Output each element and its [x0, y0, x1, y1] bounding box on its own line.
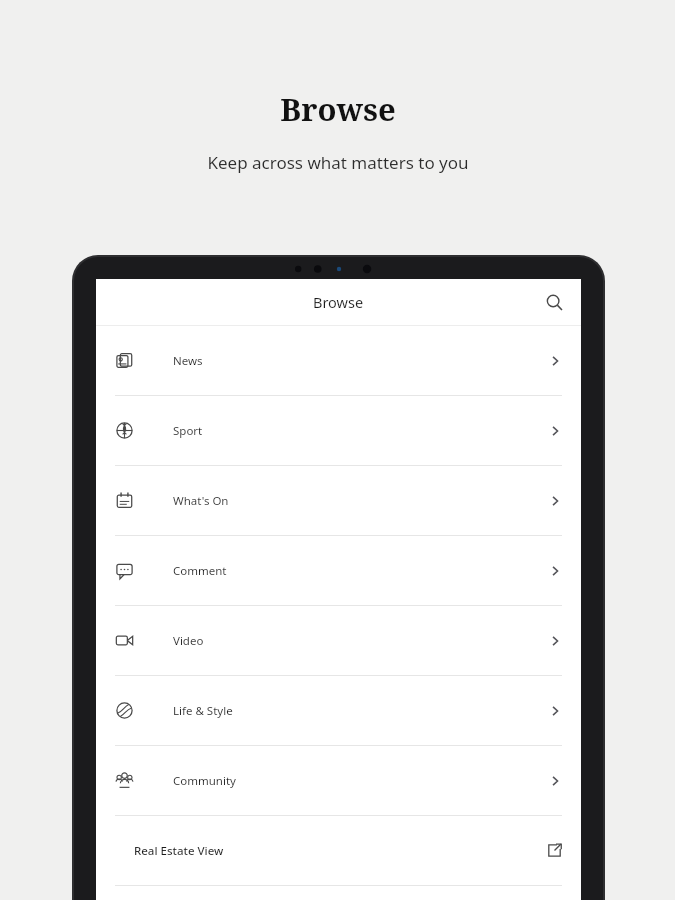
button[interactable]: Search — [537, 285, 571, 319]
button[interactable]: Video — [96, 606, 581, 675]
button[interactable]: Life & Style — [96, 676, 581, 745]
staticText: News — [173, 353, 548, 369]
staticText: Life & Style — [173, 703, 548, 719]
staticText: Sport — [173, 423, 548, 439]
button[interactable]: Real Estate View — [96, 816, 581, 885]
button[interactable]: Community — [96, 746, 581, 815]
staticText: Keep across what matters to you — [207, 151, 469, 174]
staticText: Browse — [280, 88, 396, 130]
button[interactable]: Comment — [96, 536, 581, 605]
staticText: Real Estate View — [134, 843, 547, 859]
button[interactable]: News — [96, 326, 581, 395]
button[interactable]: What's On — [96, 466, 581, 535]
staticText: What's On — [173, 493, 548, 509]
staticText: Video — [173, 633, 548, 649]
staticText: Community — [173, 773, 548, 789]
staticText: Browse — [313, 292, 364, 312]
button[interactable]: Sport — [96, 396, 581, 465]
staticText: Comment — [173, 563, 548, 579]
